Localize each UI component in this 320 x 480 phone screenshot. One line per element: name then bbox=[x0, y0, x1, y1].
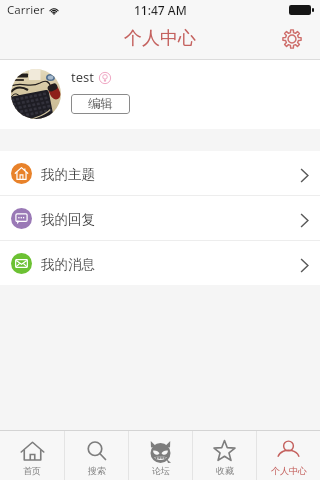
button[interactable]: 我的回复 bbox=[0, 196, 320, 240]
staticText: 搜索 bbox=[88, 465, 106, 476]
staticText: Carrier bbox=[7, 2, 45, 18]
button[interactable]: 首页 bbox=[0, 431, 64, 480]
staticText: 我的主题 bbox=[41, 166, 95, 183]
staticText: 我的回复 bbox=[41, 211, 95, 228]
button[interactable]: Settings bbox=[276, 23, 308, 55]
button[interactable]: 我的消息 bbox=[0, 241, 320, 285]
staticText: 首页 bbox=[23, 465, 41, 476]
staticText: test bbox=[71, 68, 94, 86]
staticText: 论坛 bbox=[152, 465, 170, 476]
button[interactable]: 搜索 bbox=[65, 431, 128, 480]
button[interactable]: 我的主题 bbox=[0, 151, 320, 195]
button[interactable]: 个人中心 bbox=[257, 431, 320, 480]
button[interactable]: 论坛 bbox=[129, 431, 192, 480]
staticText: 个人中心 bbox=[271, 465, 307, 476]
staticText: 个人中心 bbox=[124, 27, 196, 50]
staticText: 11:47 AM bbox=[134, 2, 187, 18]
staticText: 编辑 bbox=[88, 96, 113, 112]
staticText: 我的消息 bbox=[41, 256, 95, 273]
staticText: 收藏 bbox=[216, 465, 234, 476]
button[interactable]: 收藏 bbox=[193, 431, 256, 480]
button[interactable]: 编辑 bbox=[71, 94, 130, 114]
